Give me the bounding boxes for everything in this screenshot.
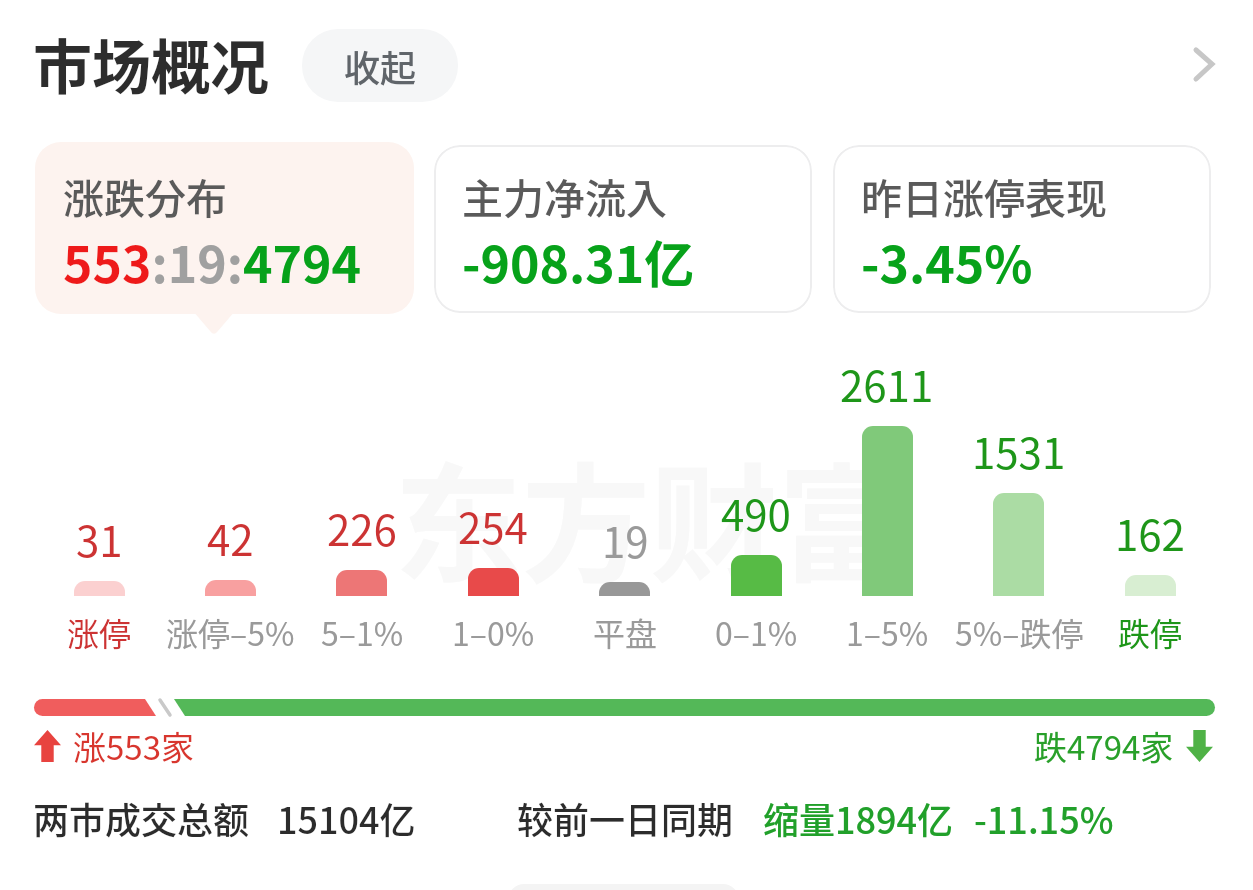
- staticText: 31: [76, 508, 123, 569]
- staticText: 收起: [344, 40, 417, 92]
- button[interactable]: 收起: [302, 29, 458, 102]
- staticText: 主力净流入: [462, 166, 667, 225]
- staticText: 490: [721, 482, 791, 543]
- staticText: 42: [207, 507, 254, 568]
- staticText: 1531: [972, 420, 1066, 481]
- button[interactable]: 主力净流入: [434, 145, 812, 313]
- button[interactable]: 昨日涨停表现: [833, 145, 1211, 313]
- staticText: 东方财富: [394, 424, 907, 609]
- button[interactable]: 涨跌分布: [35, 142, 414, 314]
- staticText: 19: [602, 509, 649, 570]
- staticText: 市场概况: [33, 21, 270, 106]
- staticText: 涨553家: [73, 722, 194, 770]
- button[interactable]: More: [1172, 24, 1242, 104]
- staticText: 5–1%: [321, 609, 404, 655]
- staticText: 涨跌分布: [63, 166, 227, 225]
- staticText: 两市成交总额: [33, 792, 250, 844]
- staticText: 254: [458, 495, 528, 556]
- staticText: 跌停: [1118, 609, 1183, 655]
- staticText: -908.31亿: [462, 225, 695, 297]
- staticText: 15104亿: [277, 792, 416, 844]
- staticText: 昨日涨停表现: [861, 166, 1107, 225]
- staticText: 1–5%: [846, 609, 929, 655]
- staticText: -11.15%: [974, 792, 1114, 844]
- staticText: 跌4794家: [1034, 722, 1174, 770]
- staticText: 涨停–5%: [166, 609, 295, 655]
- staticText: 1–0%: [452, 609, 535, 655]
- staticText: 5%–跌停: [955, 609, 1084, 655]
- staticText: 较前一日同期: [517, 792, 734, 844]
- staticText: 缩量1894亿: [763, 792, 954, 844]
- staticText: 162: [1115, 502, 1185, 563]
- staticText: 2611: [840, 353, 934, 414]
- staticText: -3.45%: [861, 225, 1033, 297]
- staticText: 0–1%: [715, 609, 798, 655]
- staticText: 平盘: [593, 609, 658, 655]
- staticText: 涨停: [67, 609, 132, 655]
- staticText: 553:19:4794: [63, 225, 361, 297]
- staticText: 226: [327, 497, 397, 558]
